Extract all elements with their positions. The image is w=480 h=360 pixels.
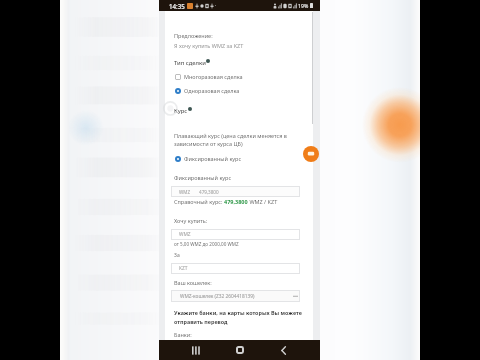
staticText: Ваш кошелек: <box>174 279 212 286</box>
button[interactable]: WMZ-кошелек (Z32 2604418139) <box>171 290 300 302</box>
button[interactable]: Help <box>188 107 192 111</box>
staticText: 479,3800 <box>224 198 248 205</box>
button[interactable]: Help <box>206 59 210 63</box>
staticText: Одноразовая сделка <box>184 87 240 94</box>
staticText: Хочу купить: <box>174 217 208 224</box>
staticText: Курс <box>174 107 188 115</box>
staticText: Предложение: <box>174 32 213 39</box>
staticText: За <box>174 252 180 259</box>
staticText: WMZ <box>179 231 191 238</box>
button[interactable]: Home <box>229 340 251 360</box>
button[interactable]: Многоразовая сделка <box>174 73 303 80</box>
staticText: WMZ / KZT <box>248 198 278 205</box>
button[interactable]: Одноразовая сделка <box>174 87 303 94</box>
staticText: Фиксированный курс <box>184 155 242 162</box>
staticText: Плавающий курс (цена сделки меняется в з… <box>174 132 287 148</box>
button[interactable]: WMZ <box>171 186 300 197</box>
staticText: Я хочу купить WMZ за KZT <box>174 42 244 49</box>
staticText: Многоразовая сделка <box>184 73 243 80</box>
staticText: 19% <box>298 2 309 9</box>
staticText: Банки: <box>174 331 192 338</box>
button[interactable]: Фиксированный курс <box>174 155 303 162</box>
staticText: Справочный курс: <box>174 198 224 205</box>
button[interactable]: Recent apps <box>185 340 207 360</box>
staticText: 14:35 <box>169 2 185 10</box>
button[interactable]: Back <box>272 340 294 360</box>
button[interactable]: Support chat <box>303 146 319 162</box>
staticText: Тип сделки <box>174 59 206 67</box>
staticText: от 5,00 WMZ до 2000,00 WMZ <box>174 241 239 247</box>
staticText: WMZ <box>179 189 191 195</box>
staticText: 479,3800 <box>199 189 219 195</box>
staticText: WMZ-кошелек (Z32 2604418139) <box>180 293 255 300</box>
button[interactable]: WMZ <box>171 229 300 240</box>
staticText: KZT <box>179 265 188 272</box>
staticText: Фиксированный курс <box>174 174 232 181</box>
button[interactable]: KZT <box>171 263 300 274</box>
staticText: Укажите банки, на карты которых Вы может… <box>174 309 302 326</box>
